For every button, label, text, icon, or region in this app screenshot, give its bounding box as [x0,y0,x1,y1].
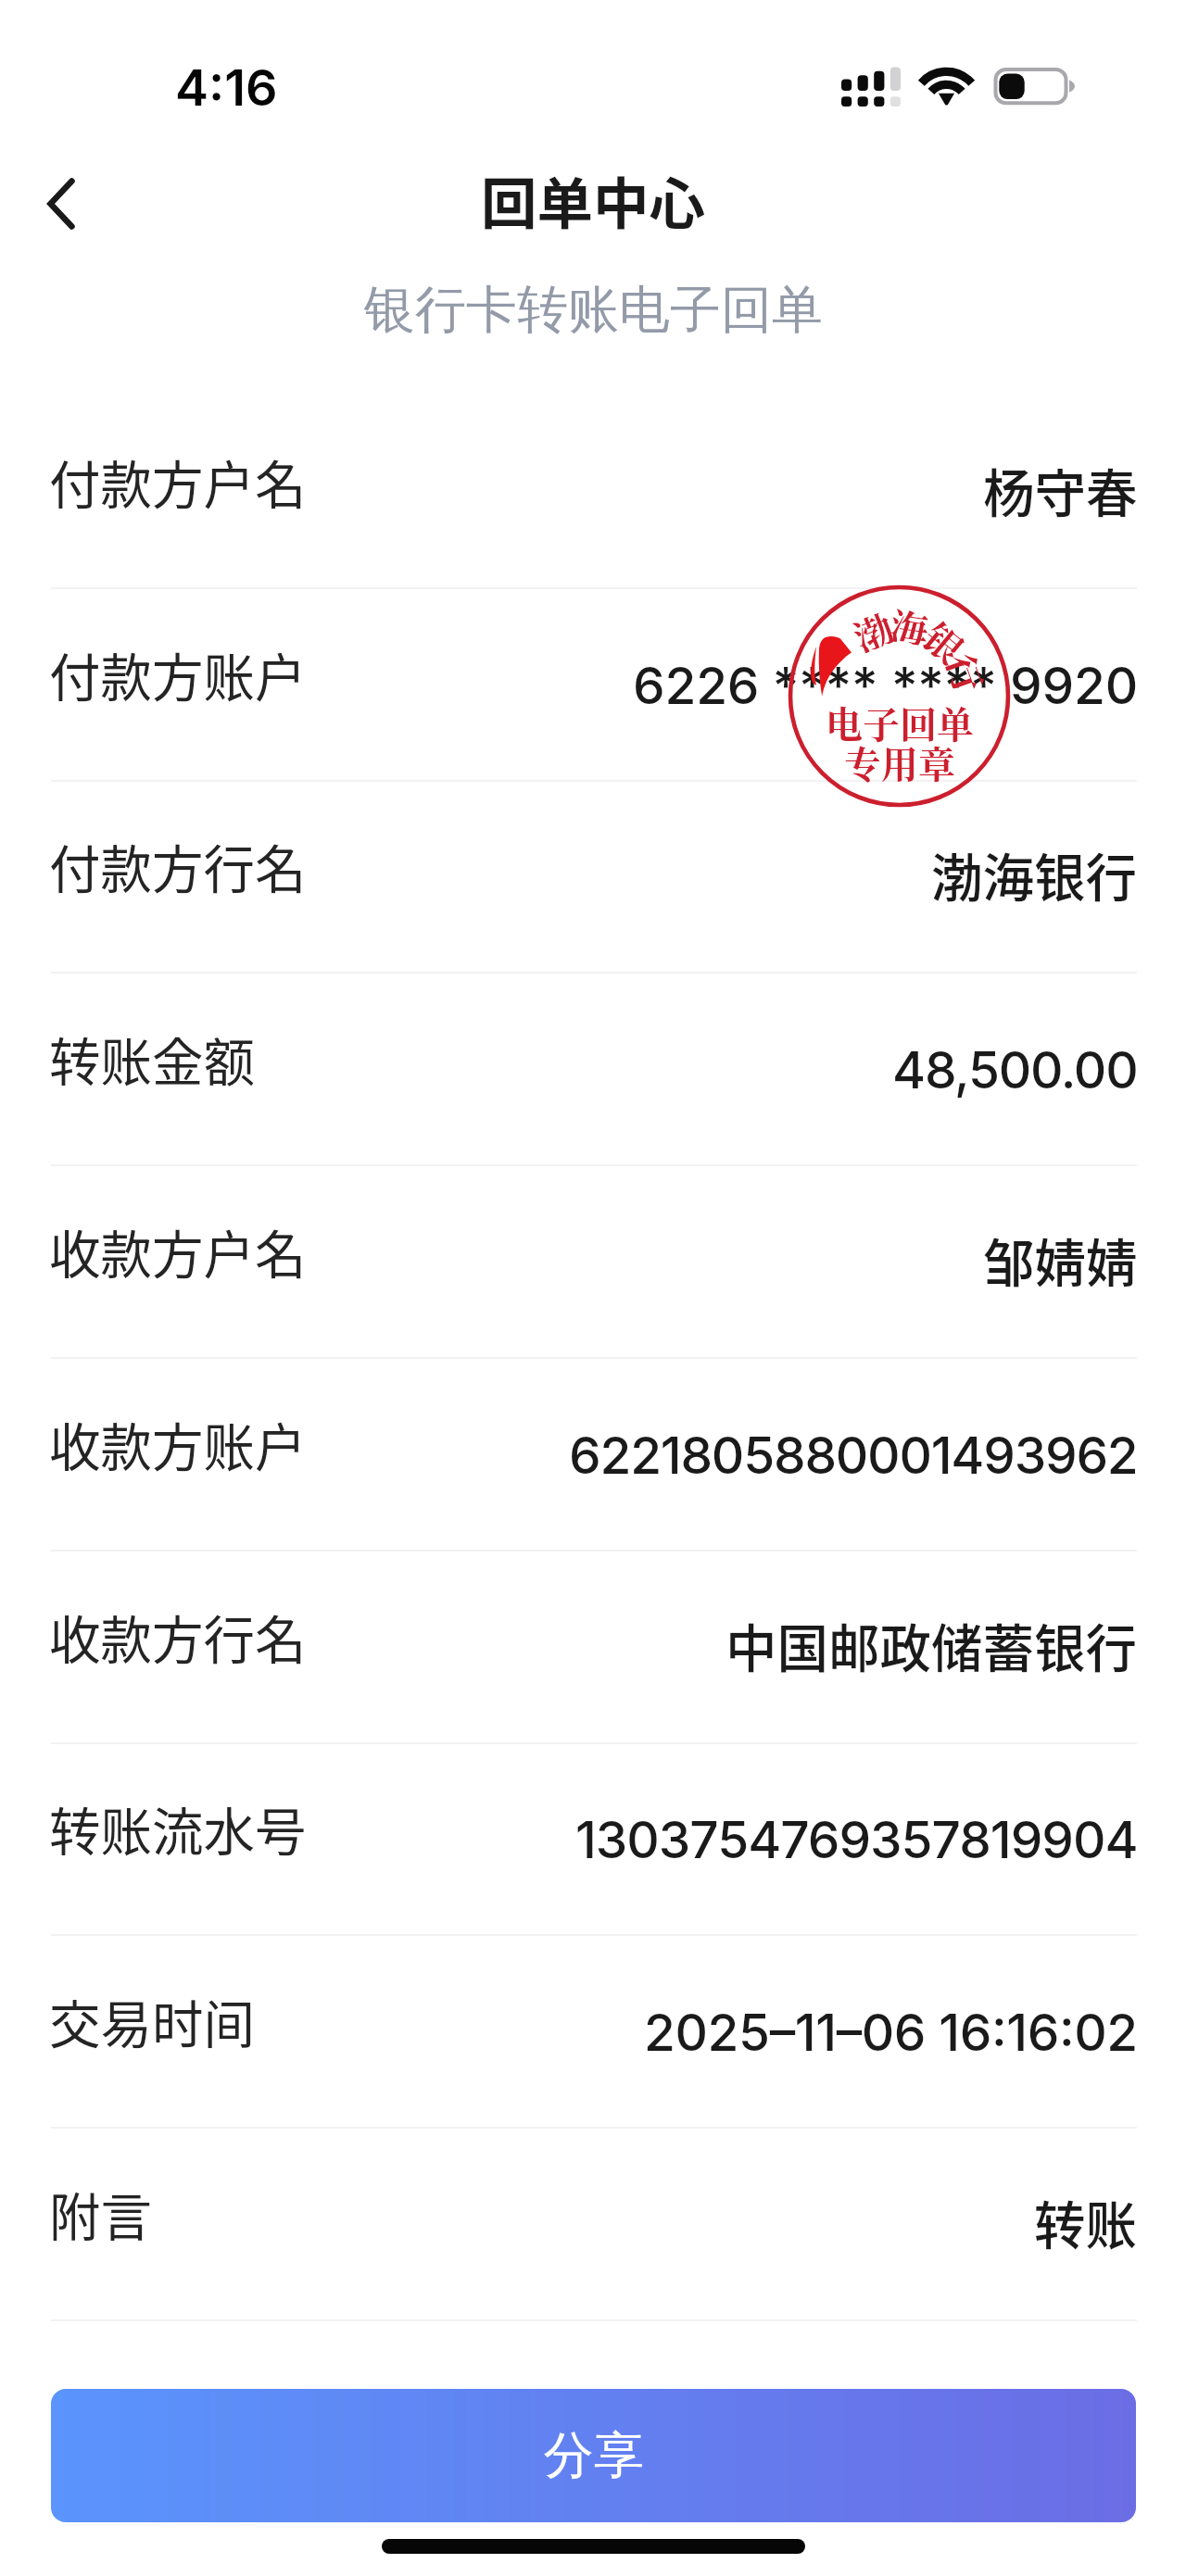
staticText: 银 [919,609,976,668]
staticText: 渤海银行 [931,837,1138,911]
staticText: 中国邮政储蓄银行 [725,1608,1138,1682]
staticText: 转账金额 [49,1022,256,1096]
button[interactable]: 转账流水号 [0,1743,1186,1936]
button[interactable]: 收款方账户 [0,1359,1186,1552]
staticText: 1303754769357819904 [575,1809,1138,1871]
staticText: 邹婧婧 [983,1223,1138,1297]
staticText: 杨守春 [983,453,1138,527]
staticText: 海 [888,597,932,646]
button[interactable]: 付款方行名 [0,781,1186,974]
staticText: 行 [943,646,998,696]
staticText: 银行卡转账电子回单 [364,278,823,342]
staticText: 付款方账户 [49,637,307,711]
staticText: 6221805880001493962 [569,1425,1138,1487]
button[interactable]: 交易时间 [0,1936,1186,2129]
staticText: 回单中心 [481,159,705,241]
staticText: 收款方行名 [49,1600,307,1674]
staticText: 交易时间 [49,1984,256,2058]
staticText: 电子回单 [826,696,974,748]
staticText: 4:16 [175,57,278,118]
staticText: 渤 [845,599,897,655]
staticText: 附言 [49,2177,153,2251]
staticText: 分享 [544,2424,644,2487]
button[interactable]: 收款方户名 [0,1166,1186,1359]
staticText: 6226 **** **** 9920 [633,655,1138,717]
staticText: 转账流水号 [49,1791,307,1866]
staticText: 付款方户名 [49,445,307,519]
button[interactable]: 返回 [17,159,106,248]
staticText: 收款方户名 [49,1214,307,1288]
staticText: 转账 [1034,2185,1138,2259]
button[interactable]: 收款方行名 [0,1552,1186,1744]
staticText: 2025–11–06 16:16:02 [644,2002,1138,2064]
staticText: 收款方账户 [49,1407,307,1481]
staticText: 付款方行名 [49,829,307,903]
staticText: 48,500.00 [892,1039,1138,1101]
button[interactable]: 附言 [0,2129,1186,2321]
button[interactable]: 付款方账户 [0,589,1186,782]
button[interactable]: 分享 [51,2389,1136,2522]
button[interactable]: 转账金额 [0,974,1186,1166]
button[interactable]: 付款方户名 [0,396,1186,589]
staticText: 专用章 [844,735,955,788]
